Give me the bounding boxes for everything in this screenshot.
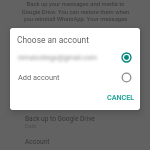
staticText: Choose an account bbox=[17, 35, 89, 45]
button[interactable]: nimalcollege@gmail.com bbox=[10, 48, 140, 67]
staticText: Back up to Google Drive bbox=[25, 115, 95, 123]
other: Select account bbox=[121, 72, 132, 83]
button[interactable]: Account bbox=[0, 135, 150, 150]
staticText: Back up your messages and media to Googl… bbox=[20, 1, 131, 22]
other: Selected account bbox=[121, 52, 132, 63]
staticText: CANCEL bbox=[107, 93, 135, 101]
staticText: Account bbox=[25, 138, 50, 146]
staticText: Add account bbox=[18, 73, 60, 82]
staticText: nimalcollege@gmail.com bbox=[18, 54, 97, 62]
button[interactable]: Back up to Google Drive bbox=[0, 112, 150, 133]
button[interactable]: Add account bbox=[10, 68, 140, 87]
staticText: Daily bbox=[25, 123, 37, 129]
button[interactable]: CANCEL bbox=[101, 89, 140, 105]
